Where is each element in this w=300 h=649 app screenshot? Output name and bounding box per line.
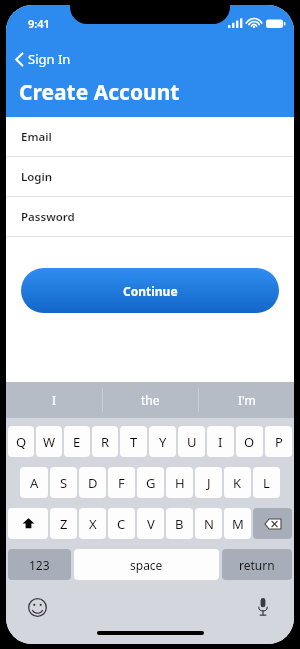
button[interactable]: Z [50,508,77,539]
button[interactable]: K [224,467,251,498]
staticText: T [130,433,138,451]
button[interactable]: M [224,508,251,539]
staticText: I [218,433,223,451]
button[interactable]: D [79,467,106,498]
staticText: Email [21,129,52,145]
button[interactable]: Shift [8,508,48,539]
button[interactable]: Email [6,117,294,157]
button[interactable]: J [195,467,222,498]
button[interactable]: I [6,382,102,418]
button[interactable]: Q [8,426,34,457]
button[interactable]: P [265,426,292,457]
staticText: J [207,474,211,492]
button[interactable]: F [108,467,135,498]
button[interactable]: Password [6,197,294,237]
button[interactable]: Continue [21,268,279,313]
staticText: A [30,474,39,492]
staticText: X [89,515,97,533]
button[interactable]: B [166,508,193,539]
button[interactable]: Dictation [250,594,276,620]
button[interactable]: Backspace [253,508,292,539]
button[interactable]: G [137,467,164,498]
staticText: return [239,557,275,573]
staticText: D [88,474,98,492]
staticText: H [175,474,185,492]
button[interactable]: E [64,426,90,457]
button[interactable]: S [50,467,77,498]
button[interactable]: space [74,549,219,580]
staticText: R [101,433,110,451]
staticText: space [130,557,163,573]
button[interactable]: H [166,467,193,498]
staticText: Continue [123,283,178,299]
staticText: E [73,433,81,451]
button[interactable]: Login [6,157,294,197]
staticText: S [60,474,68,492]
button[interactable]: the [103,382,198,418]
button[interactable]: R [92,426,118,457]
button[interactable]: I [207,426,234,457]
staticText: 9:41 [28,16,50,31]
button[interactable]: Y [149,426,176,457]
button[interactable]: 123 [8,549,71,580]
staticText: the [141,392,160,408]
staticText: K [233,474,242,492]
button[interactable]: I'm [199,382,294,418]
staticText: Z [60,515,68,533]
staticText: W [43,433,56,451]
button[interactable]: L [253,467,280,498]
staticText: Y [159,433,167,451]
staticText: V [147,515,155,533]
staticText: Q [16,433,27,451]
staticText: I'm [238,392,256,408]
button[interactable]: C [108,508,135,539]
button[interactable]: Sign In [6,47,81,71]
button[interactable]: T [120,426,147,457]
staticText: Create Account [19,78,180,107]
staticText: M [232,515,244,533]
button[interactable]: N [195,508,222,539]
staticText: 123 [29,557,50,573]
staticText: L [263,474,270,492]
staticText: P [275,433,283,451]
button[interactable]: V [137,508,164,539]
staticText: Sign In [28,50,71,68]
staticText: U [187,433,197,451]
button[interactable]: A [20,467,48,498]
staticText: F [118,474,125,492]
staticText: N [204,515,214,533]
staticText: C [117,515,126,533]
button[interactable]: Emoji [24,594,50,620]
button[interactable]: X [79,508,106,539]
staticText: O [244,433,255,451]
staticText: G [146,474,156,492]
button[interactable]: W [36,426,62,457]
button[interactable]: return [222,549,292,580]
staticText: Login [21,169,53,185]
button[interactable]: O [236,426,263,457]
staticText: I [52,392,57,408]
staticText: B [175,515,184,533]
button[interactable]: U [178,426,205,457]
staticText: Password [21,209,75,225]
